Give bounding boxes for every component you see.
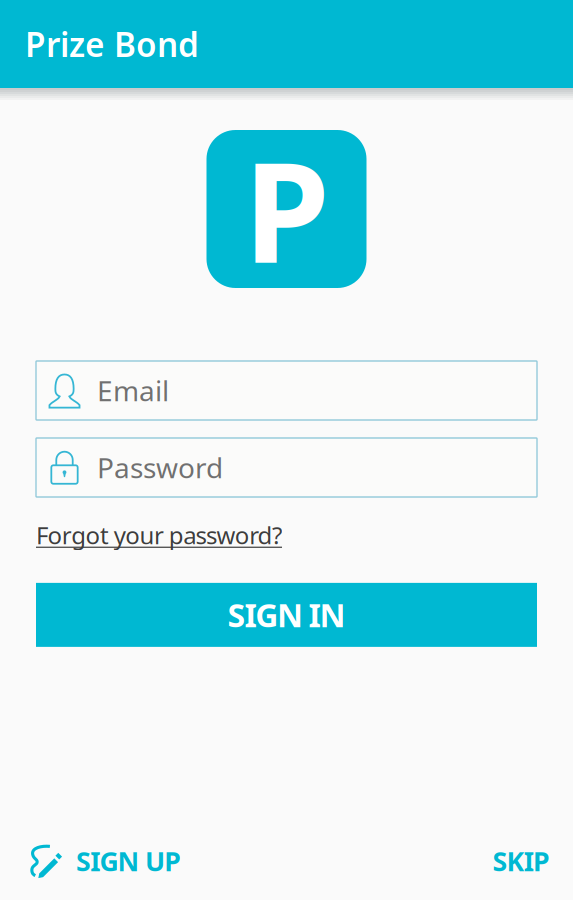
staticText: Prize Bond [25, 22, 199, 66]
button[interactable]: Email [36, 361, 537, 420]
button[interactable]: SIGN UP [21, 832, 189, 890]
button[interactable]: SKIP [484, 833, 558, 889]
staticText: SIGN UP [76, 843, 181, 879]
staticText: SIGN IN [228, 594, 345, 636]
staticText: Email [97, 372, 169, 409]
staticText: Forgot your password? [36, 519, 282, 551]
staticText: SKIP [492, 843, 550, 879]
staticText: Password [97, 449, 223, 486]
button[interactable]: SIGN IN [36, 583, 537, 647]
button[interactable]: Password [36, 438, 537, 497]
staticText: P [243, 117, 329, 301]
button[interactable]: Forgot your password? [36, 519, 282, 551]
